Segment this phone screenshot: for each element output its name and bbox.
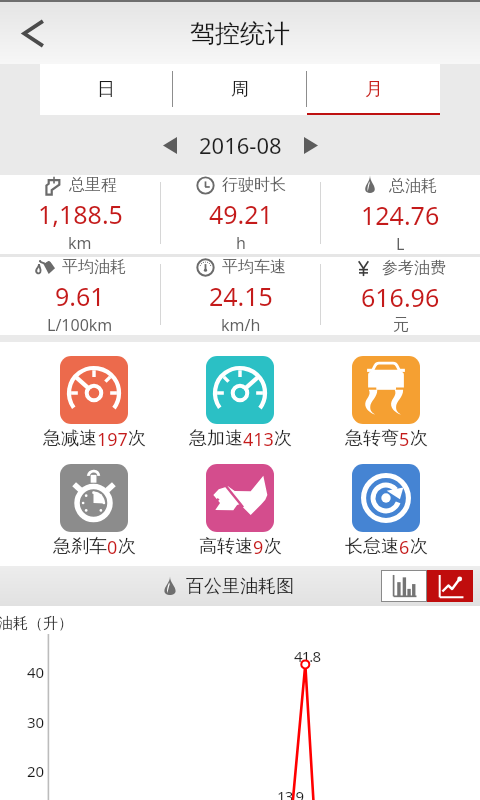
staticText: 总里程 bbox=[69, 175, 117, 195]
button[interactable]: 平均车速 bbox=[161, 257, 320, 335]
staticText: 急刹车 bbox=[53, 535, 107, 558]
staticText: 元 bbox=[393, 315, 409, 335]
button[interactable]: 平均油耗 bbox=[0, 257, 160, 335]
staticText: 百公里油耗图 bbox=[186, 575, 294, 598]
staticText: L bbox=[396, 233, 405, 254]
staticText: 2016-08 bbox=[199, 130, 282, 160]
staticText: 0 bbox=[107, 535, 118, 560]
staticText: 124.76 bbox=[361, 198, 440, 232]
staticText: 40 bbox=[27, 662, 45, 682]
staticText: 日 bbox=[97, 78, 115, 101]
button[interactable]: 行驶时长 bbox=[161, 175, 320, 254]
staticText: 次 bbox=[410, 535, 428, 558]
staticText: 197 bbox=[97, 427, 128, 452]
staticText: 49.21 bbox=[209, 197, 273, 231]
staticText: 急转弯 bbox=[345, 427, 399, 450]
staticText: 30 bbox=[27, 712, 45, 732]
staticText: 24.15 bbox=[209, 279, 273, 313]
staticText: 油耗（升） bbox=[0, 614, 73, 633]
button[interactable]: Bar chart bbox=[381, 570, 427, 602]
button[interactable]: Next month bbox=[291, 125, 331, 165]
staticText: 次 bbox=[118, 535, 136, 558]
staticText: 次 bbox=[274, 427, 292, 450]
button[interactable]: 周 bbox=[173, 64, 306, 115]
button[interactable]: 月 bbox=[307, 64, 440, 115]
staticText: 13.9 bbox=[277, 786, 304, 800]
staticText: 总油耗 bbox=[389, 176, 437, 196]
staticText: 驾控统计 bbox=[190, 18, 290, 49]
staticText: 行驶时长 bbox=[222, 175, 286, 195]
staticText: 参考油费 bbox=[382, 258, 446, 278]
staticText: 413 bbox=[243, 427, 274, 452]
staticText: 长怠速 bbox=[345, 535, 399, 558]
staticText: 次 bbox=[128, 427, 146, 450]
staticText: 616.96 bbox=[361, 280, 440, 314]
staticText: 9 bbox=[253, 535, 264, 560]
button[interactable]: Previous month bbox=[150, 125, 190, 165]
button[interactable]: 急转弯 bbox=[313, 356, 459, 452]
staticText: L/100km bbox=[47, 314, 113, 335]
staticText: 平均油耗 bbox=[62, 257, 126, 277]
staticText: 高转速 bbox=[199, 535, 253, 558]
staticText: 次 bbox=[264, 535, 282, 558]
button[interactable]: 日 bbox=[40, 64, 172, 115]
staticText: 9.61 bbox=[55, 279, 105, 313]
button[interactable]: 急减速 bbox=[21, 356, 167, 452]
button[interactable]: Back bbox=[7, 7, 59, 59]
staticText: 周 bbox=[231, 78, 249, 101]
staticText: 月 bbox=[365, 78, 383, 101]
button[interactable]: 参考油费 bbox=[321, 257, 480, 335]
staticText: 6 bbox=[399, 535, 410, 560]
button[interactable]: 急刹车 bbox=[21, 464, 167, 560]
staticText: 41.8 bbox=[294, 646, 321, 666]
button[interactable]: 急加速 bbox=[167, 356, 313, 452]
staticText: km bbox=[68, 232, 92, 254]
staticText: 急加速 bbox=[189, 427, 243, 450]
staticText: h bbox=[236, 232, 246, 254]
staticText: 急减速 bbox=[43, 427, 97, 450]
staticText: km/h bbox=[221, 314, 261, 335]
staticText: 次 bbox=[410, 427, 428, 450]
staticText: 20 bbox=[27, 761, 45, 781]
staticText: 平均车速 bbox=[222, 257, 286, 277]
staticText: 5 bbox=[399, 427, 410, 452]
button[interactable]: 长怠速 bbox=[313, 464, 459, 560]
button[interactable]: 总里程 bbox=[0, 175, 160, 254]
button[interactable]: Line chart bbox=[427, 570, 473, 602]
button[interactable]: 总油耗 bbox=[321, 175, 480, 254]
staticText: 1,188.5 bbox=[38, 197, 123, 231]
button[interactable]: 高转速 bbox=[167, 464, 313, 560]
